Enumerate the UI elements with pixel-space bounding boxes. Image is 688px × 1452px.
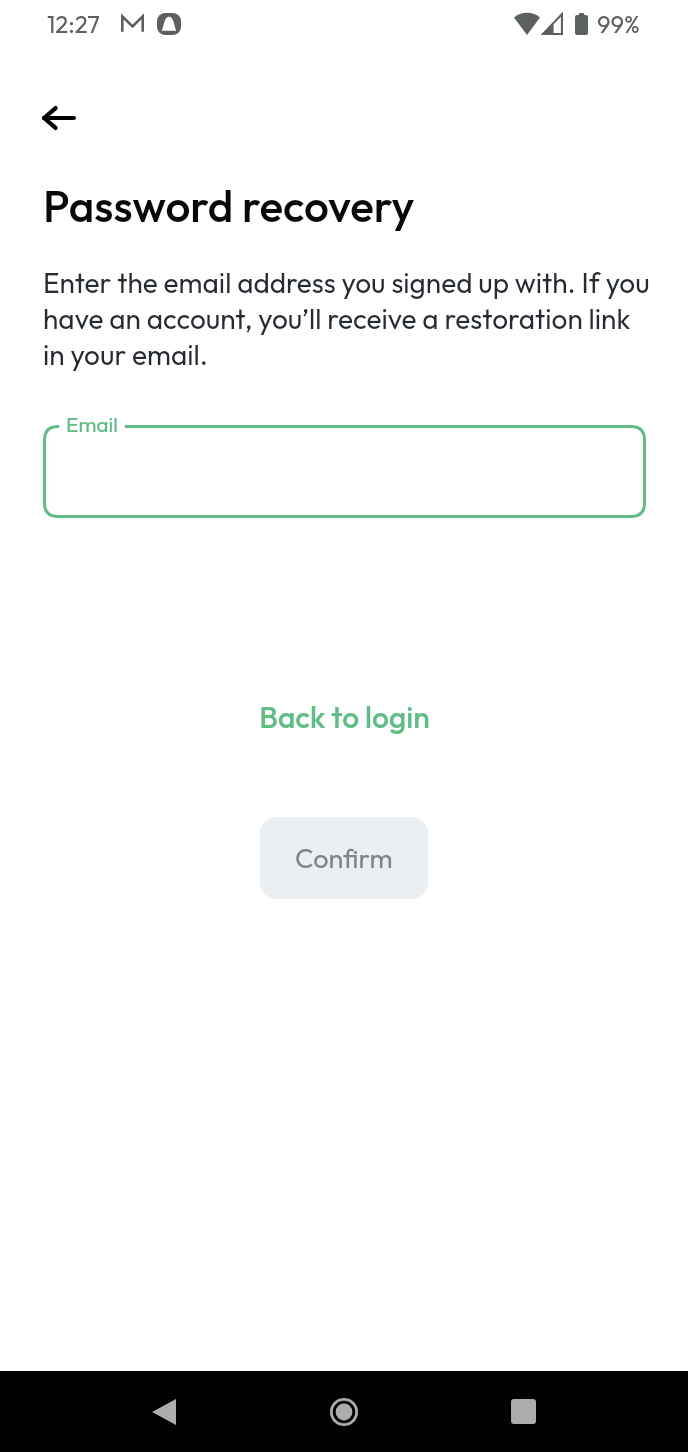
staticText: 12:27 (47, 9, 100, 39)
staticText: 99% (597, 9, 640, 39)
button[interactable]: Back (134, 1371, 194, 1452)
button[interactable]: Email address field (43, 425, 646, 518)
button[interactable]: Navigate back (30, 89, 88, 147)
staticText: Password recovery (43, 178, 415, 233)
button[interactable]: Back to login (243, 688, 446, 746)
staticText: Confirm (295, 841, 393, 875)
button[interactable]: Confirm (260, 817, 428, 899)
staticText: Back to login (259, 698, 430, 736)
button[interactable]: Recent apps (493, 1371, 553, 1452)
staticText: Email (66, 411, 118, 437)
staticText: Enter the email address you signed up wi… (43, 265, 655, 372)
button[interactable]: Home (314, 1371, 374, 1452)
